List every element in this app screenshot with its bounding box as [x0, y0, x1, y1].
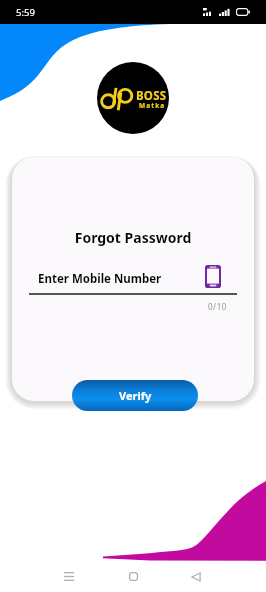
staticText: Enter Mobile Number — [38, 271, 205, 287]
staticText: 5:59 — [16, 6, 35, 19]
staticText: Verify — [119, 388, 152, 403]
button[interactable]: Verify — [72, 380, 198, 411]
staticText: 0/10 — [29, 301, 227, 312]
staticText: BOSS — [136, 88, 167, 104]
staticText: Forgot Password — [29, 228, 237, 247]
button[interactable]: Recent apps — [53, 561, 85, 592]
button[interactable]: Home — [117, 561, 149, 592]
button[interactable]: Back — [180, 561, 212, 592]
staticText: Matka — [139, 101, 166, 110]
